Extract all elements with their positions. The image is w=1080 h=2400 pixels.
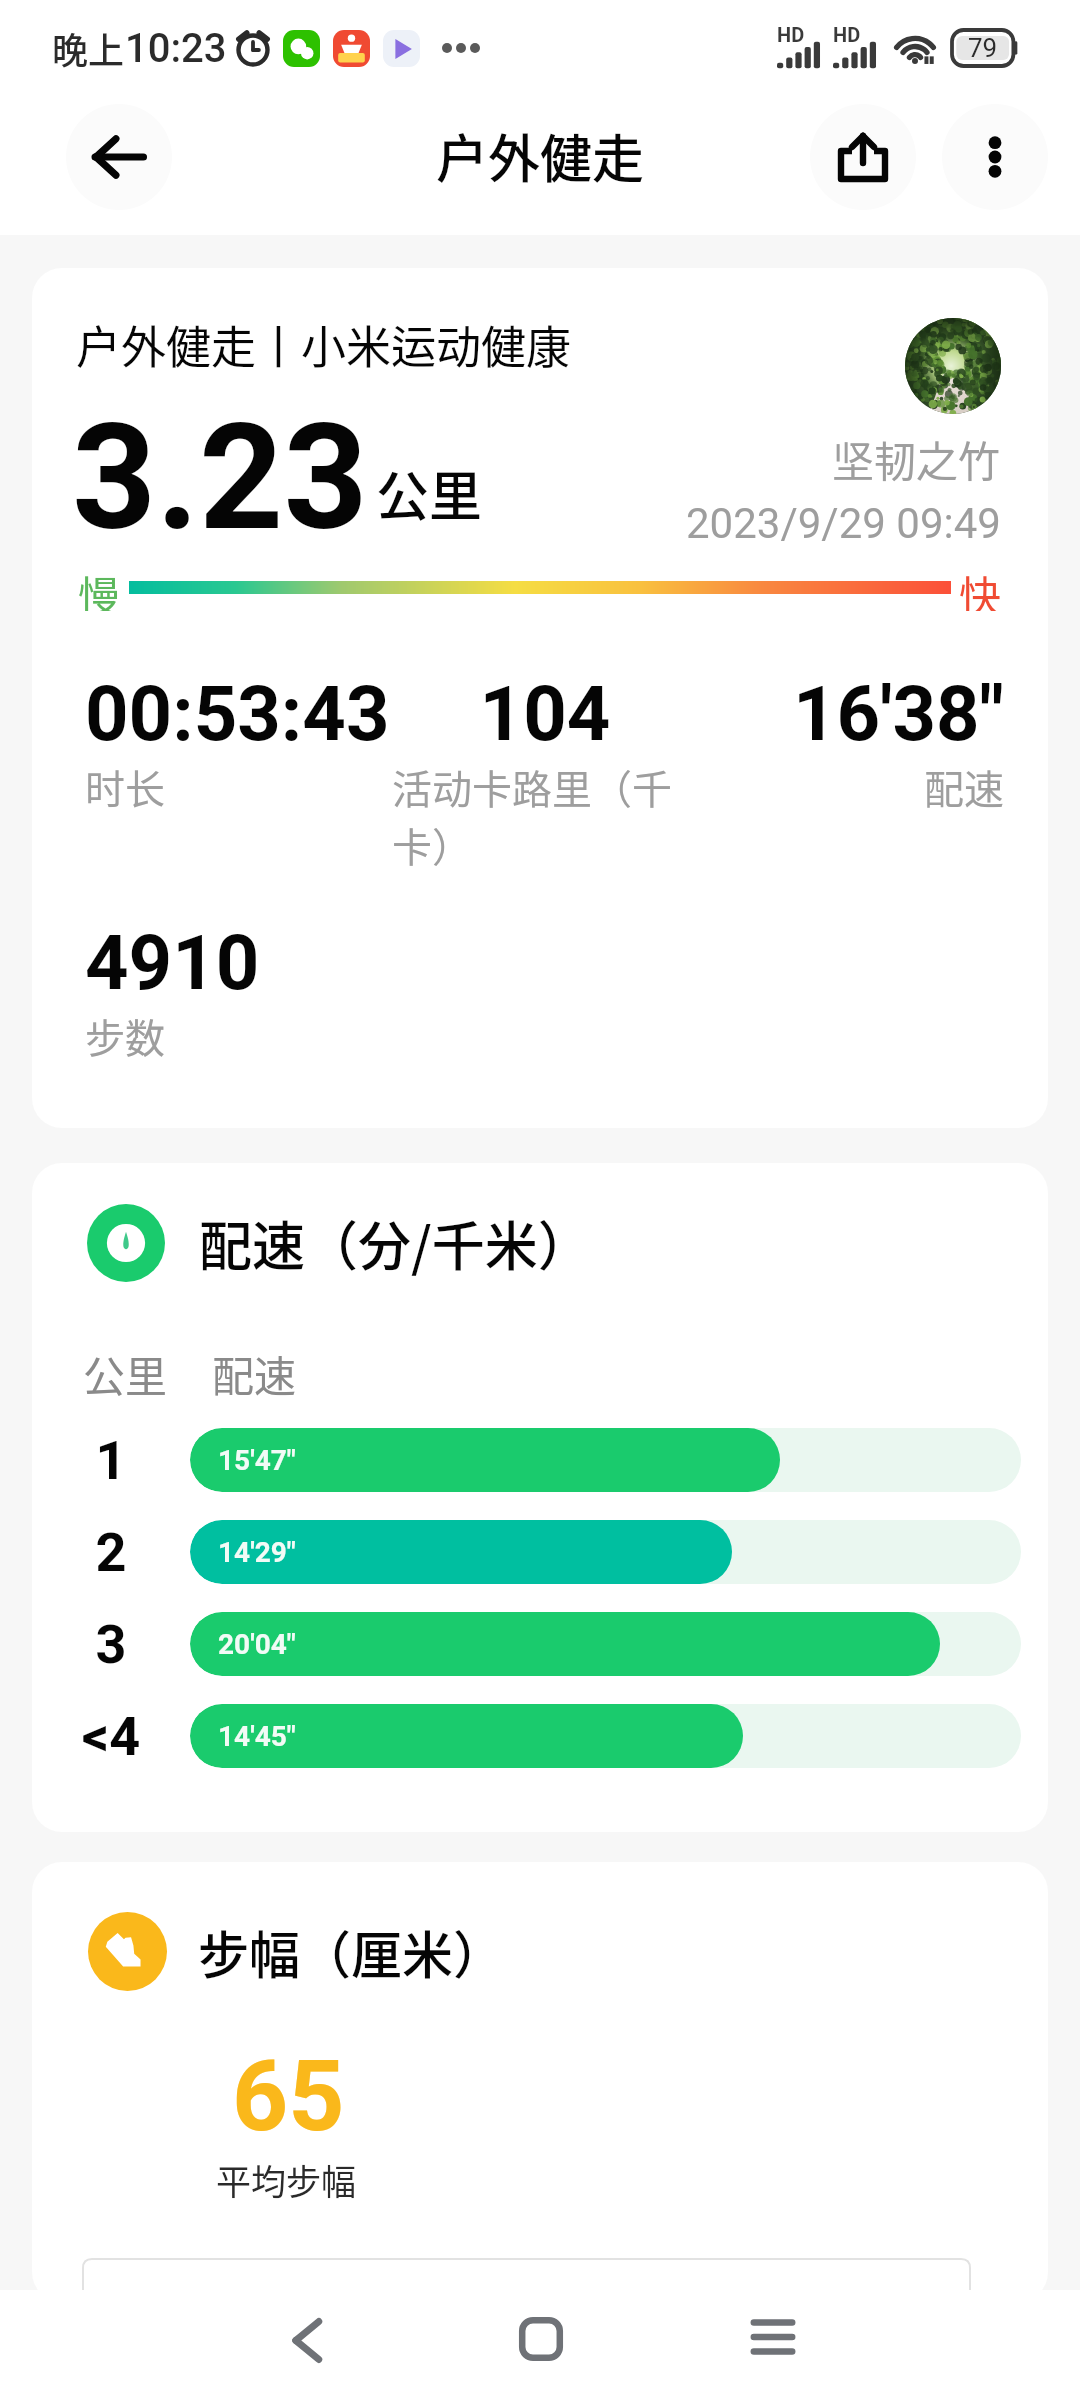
button[interactable]: More options xyxy=(942,104,1048,210)
button[interactable]: Back xyxy=(227,2285,387,2395)
button[interactable]: Recent apps xyxy=(693,2282,853,2392)
staticText: 3.23 xyxy=(72,392,368,564)
staticText: 79 xyxy=(968,33,998,63)
staticText: HD xyxy=(833,23,861,46)
staticText: 步幅（厘米） xyxy=(198,1915,505,1989)
staticText: 晚上 xyxy=(52,22,125,74)
staticText: 16'38" xyxy=(698,669,1004,758)
staticText: 20'04" xyxy=(218,1628,296,1661)
staticText: 平均步幅 xyxy=(216,2154,357,2205)
staticText: 快 xyxy=(959,563,1002,611)
staticText: 14'29" xyxy=(218,1536,296,1569)
staticText: 14'45" xyxy=(218,1720,296,1753)
staticText: HD xyxy=(777,23,805,46)
staticText: 步数 xyxy=(85,1007,391,1065)
staticText: 4910 xyxy=(85,918,391,1007)
staticText: <4 xyxy=(58,1705,164,1768)
staticText: 104 xyxy=(392,669,698,758)
staticText: 户外健走 xyxy=(436,118,645,193)
staticText: 2023/9/29 09:49 xyxy=(686,499,1001,548)
button[interactable]: Home xyxy=(461,2284,621,2394)
staticText: 公里 xyxy=(376,455,482,532)
staticText: 15'47" xyxy=(218,1444,296,1477)
staticText: 10:23 xyxy=(125,25,227,72)
staticText: 65 xyxy=(232,2039,345,2154)
staticText: 00:53:43 xyxy=(85,669,392,758)
button[interactable]: Back xyxy=(66,104,172,210)
button[interactable]: Share xyxy=(810,104,916,210)
staticText: 配速（分/千米） xyxy=(199,1205,591,1282)
staticText: 2 xyxy=(58,1521,164,1584)
staticText: 坚韧之竹 xyxy=(832,428,1001,489)
staticText: 慢 xyxy=(78,563,121,611)
staticText: 3 xyxy=(58,1613,164,1676)
staticText: 配速 xyxy=(212,1343,297,1404)
staticText: 时长 xyxy=(85,758,392,816)
staticText: 1 xyxy=(58,1429,164,1492)
staticText: 户外健走丨小米运动健康 xyxy=(76,312,572,377)
staticText: 活动卡路里（千卡） xyxy=(392,758,698,874)
staticText: 配速 xyxy=(698,758,1004,816)
staticText: 公里 xyxy=(83,1343,168,1404)
